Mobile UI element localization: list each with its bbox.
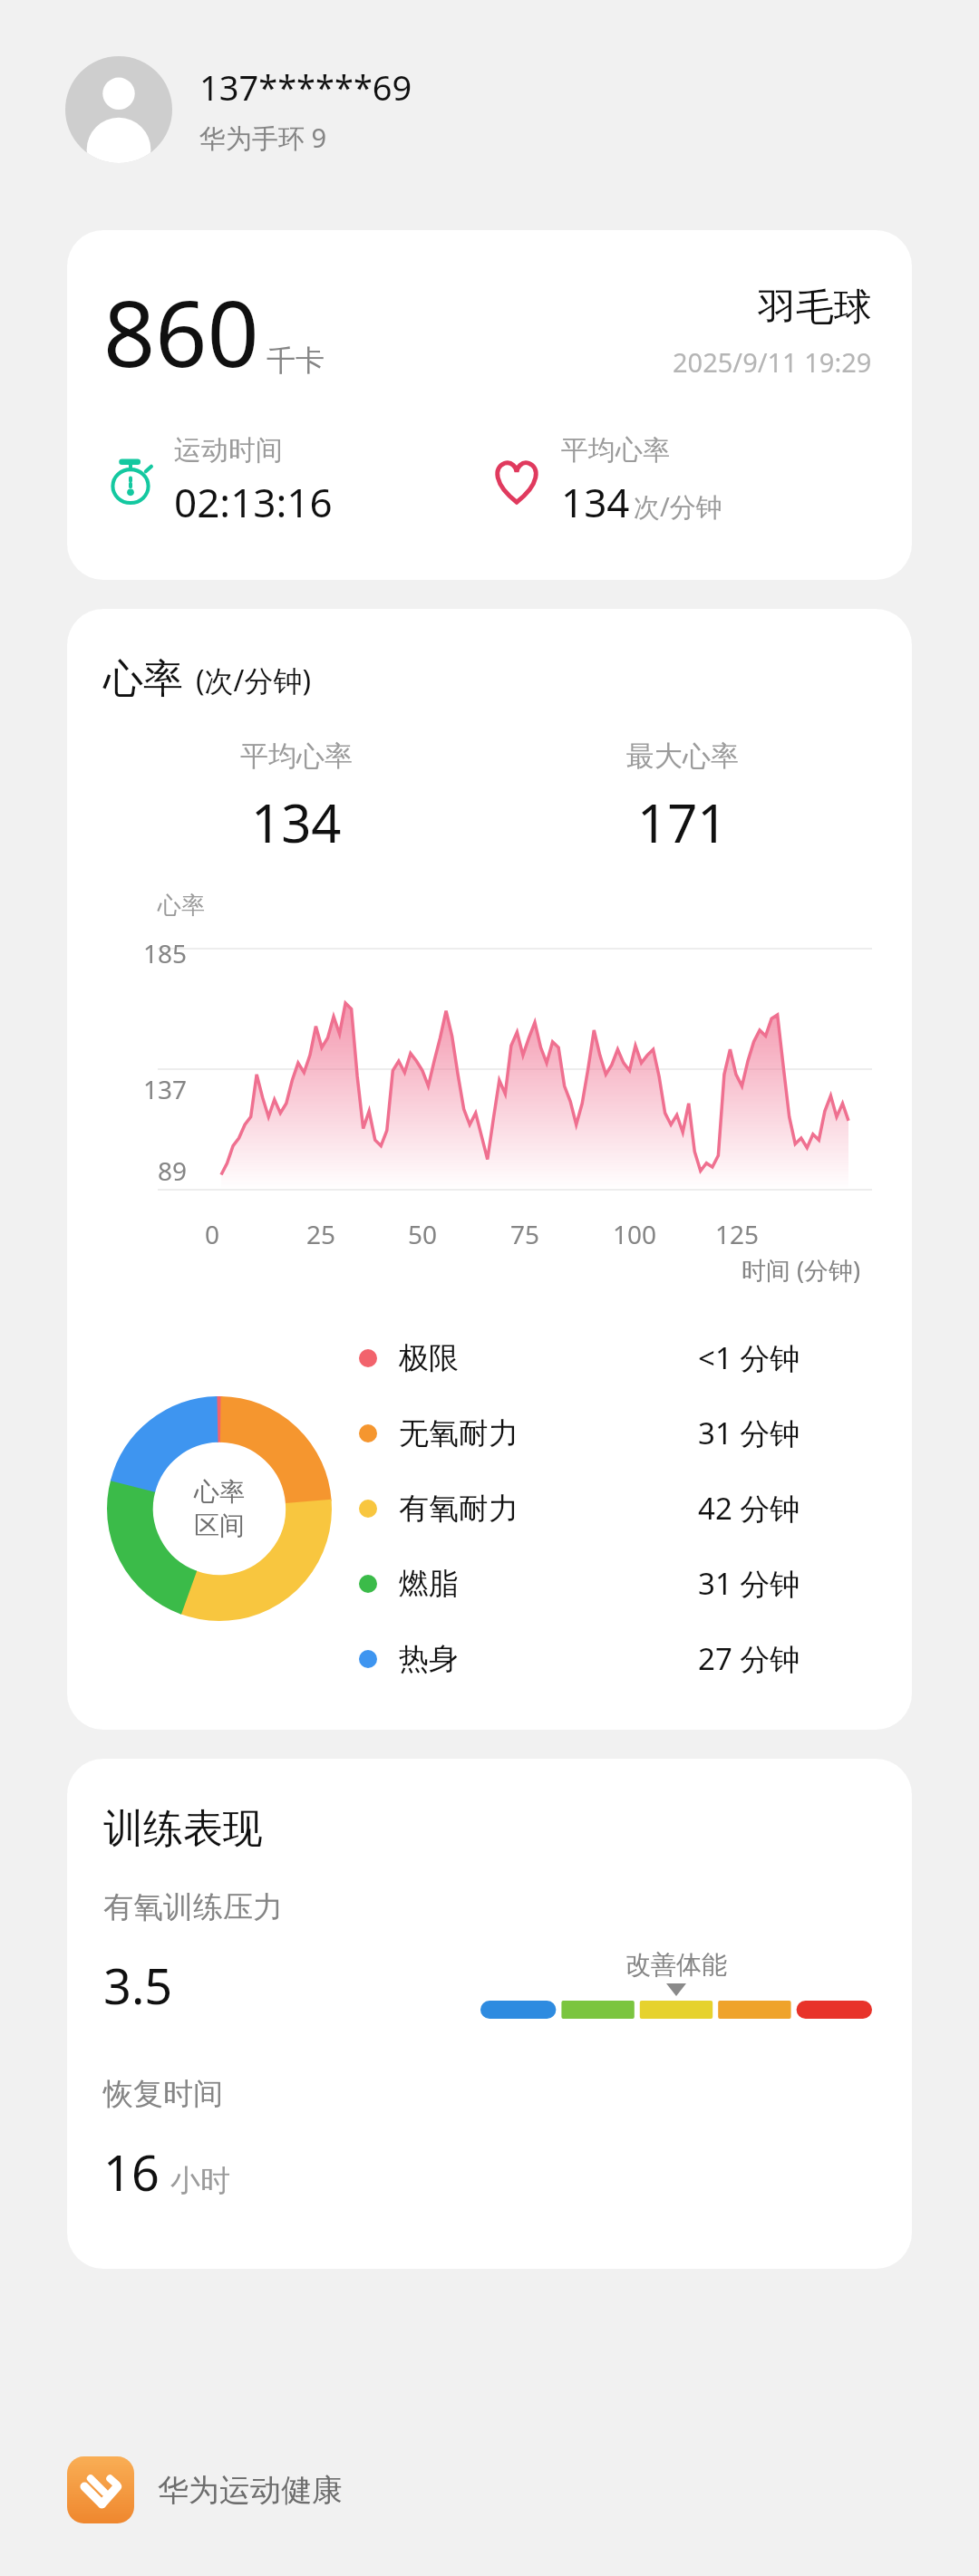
staticText: 华为手环 9 — [199, 120, 327, 156]
staticText: 燃脂 — [399, 1565, 459, 1603]
staticText: 运动时间 — [174, 433, 283, 468]
staticText: 134 — [251, 786, 342, 858]
staticText: 27 分钟 — [698, 1638, 800, 1679]
button[interactable]: 无氧耐力 — [359, 1413, 879, 1453]
staticText: 恢复时间 — [103, 2075, 223, 2113]
staticText: 有氧训练压力 — [103, 1888, 283, 1926]
button[interactable]: 燃脂 — [359, 1563, 879, 1604]
staticText: 最大心率 — [626, 738, 739, 774]
staticText: 171 — [637, 786, 728, 858]
staticText: 极限 — [399, 1339, 459, 1377]
button[interactable]: 热身 — [359, 1638, 879, 1679]
other: Profile avatar — [65, 56, 172, 163]
staticText: 860 — [103, 270, 259, 393]
staticText: 时间 (分钟) — [742, 1253, 861, 1287]
staticText: 31 分钟 — [698, 1413, 800, 1453]
staticText: 训练表现 — [103, 1804, 263, 1854]
button[interactable]: Average heart rate — [490, 433, 876, 529]
staticText: 02:13:16 — [174, 475, 333, 529]
staticText: 区间 — [194, 1510, 245, 1541]
staticText: 热身 — [399, 1640, 459, 1678]
other: Workout duration — [105, 456, 156, 507]
staticText: 千卡 — [267, 343, 325, 379]
staticText: 无氧耐力 — [399, 1414, 519, 1452]
staticText: 心率 — [103, 654, 183, 704]
staticText: 100 — [613, 1217, 657, 1251]
staticText: 134 — [561, 475, 630, 529]
staticText: 125 — [715, 1217, 760, 1251]
staticText: 小时 — [170, 2162, 230, 2200]
staticText: 42 分钟 — [698, 1488, 800, 1529]
button[interactable]: Profile avatar — [65, 56, 914, 163]
staticText: 2025/9/11 19:29 — [673, 344, 872, 380]
staticText: <1 分钟 — [698, 1337, 800, 1378]
staticText: 心率 — [158, 891, 205, 921]
staticText: 185 — [103, 936, 187, 970]
other: Average heart rate — [490, 455, 543, 507]
staticText: 心率 — [194, 1476, 245, 1508]
button[interactable]: Huawei Health — [67, 2456, 979, 2523]
staticText: 50 — [408, 1217, 438, 1251]
staticText: 0 — [205, 1217, 220, 1251]
staticText: 有氧耐力 — [399, 1490, 519, 1528]
button[interactable]: Workout duration — [105, 433, 490, 529]
staticText: 75 — [510, 1217, 540, 1251]
staticText: (次/分钟) — [196, 661, 312, 700]
button[interactable]: 有氧耐力 — [359, 1488, 879, 1529]
staticText: 华为运动健康 — [158, 2471, 343, 2510]
other: Huawei Health — [67, 2456, 134, 2523]
staticText: 25 — [306, 1217, 336, 1251]
staticText: 平均心率 — [561, 433, 670, 468]
staticText: 31 分钟 — [698, 1563, 800, 1604]
staticText: 改善体能 — [625, 1949, 727, 1981]
staticText: 羽毛球 — [758, 284, 872, 332]
staticText: 137******69 — [199, 63, 412, 111]
staticText: 平均心率 — [240, 738, 353, 774]
staticText: 137 — [103, 1072, 187, 1106]
staticText: 89 — [103, 1153, 187, 1188]
button[interactable]: 极限 — [359, 1337, 879, 1378]
staticText: 3.5 — [103, 1952, 173, 2019]
staticText: 16 — [103, 2138, 160, 2205]
staticText: 次/分钟 — [634, 488, 722, 525]
